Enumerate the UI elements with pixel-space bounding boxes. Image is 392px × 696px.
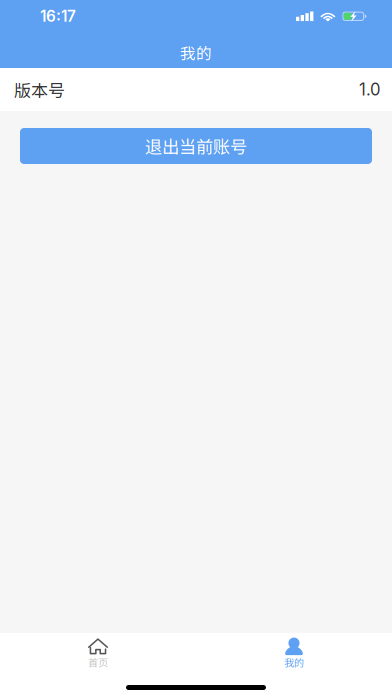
staticText: 1.0 [359, 79, 381, 100]
staticText: 首页 [88, 655, 108, 669]
staticText: 退出当前账号 [145, 133, 247, 159]
staticText: 我的 [180, 41, 212, 64]
staticText: 版本号 [14, 77, 65, 102]
button[interactable]: 首页 [0, 633, 196, 669]
button[interactable]: 退出当前账号 [20, 128, 372, 164]
staticText: 16:17 [40, 7, 76, 26]
button[interactable]: 我的 [196, 633, 392, 669]
staticText: 我的 [284, 655, 304, 669]
